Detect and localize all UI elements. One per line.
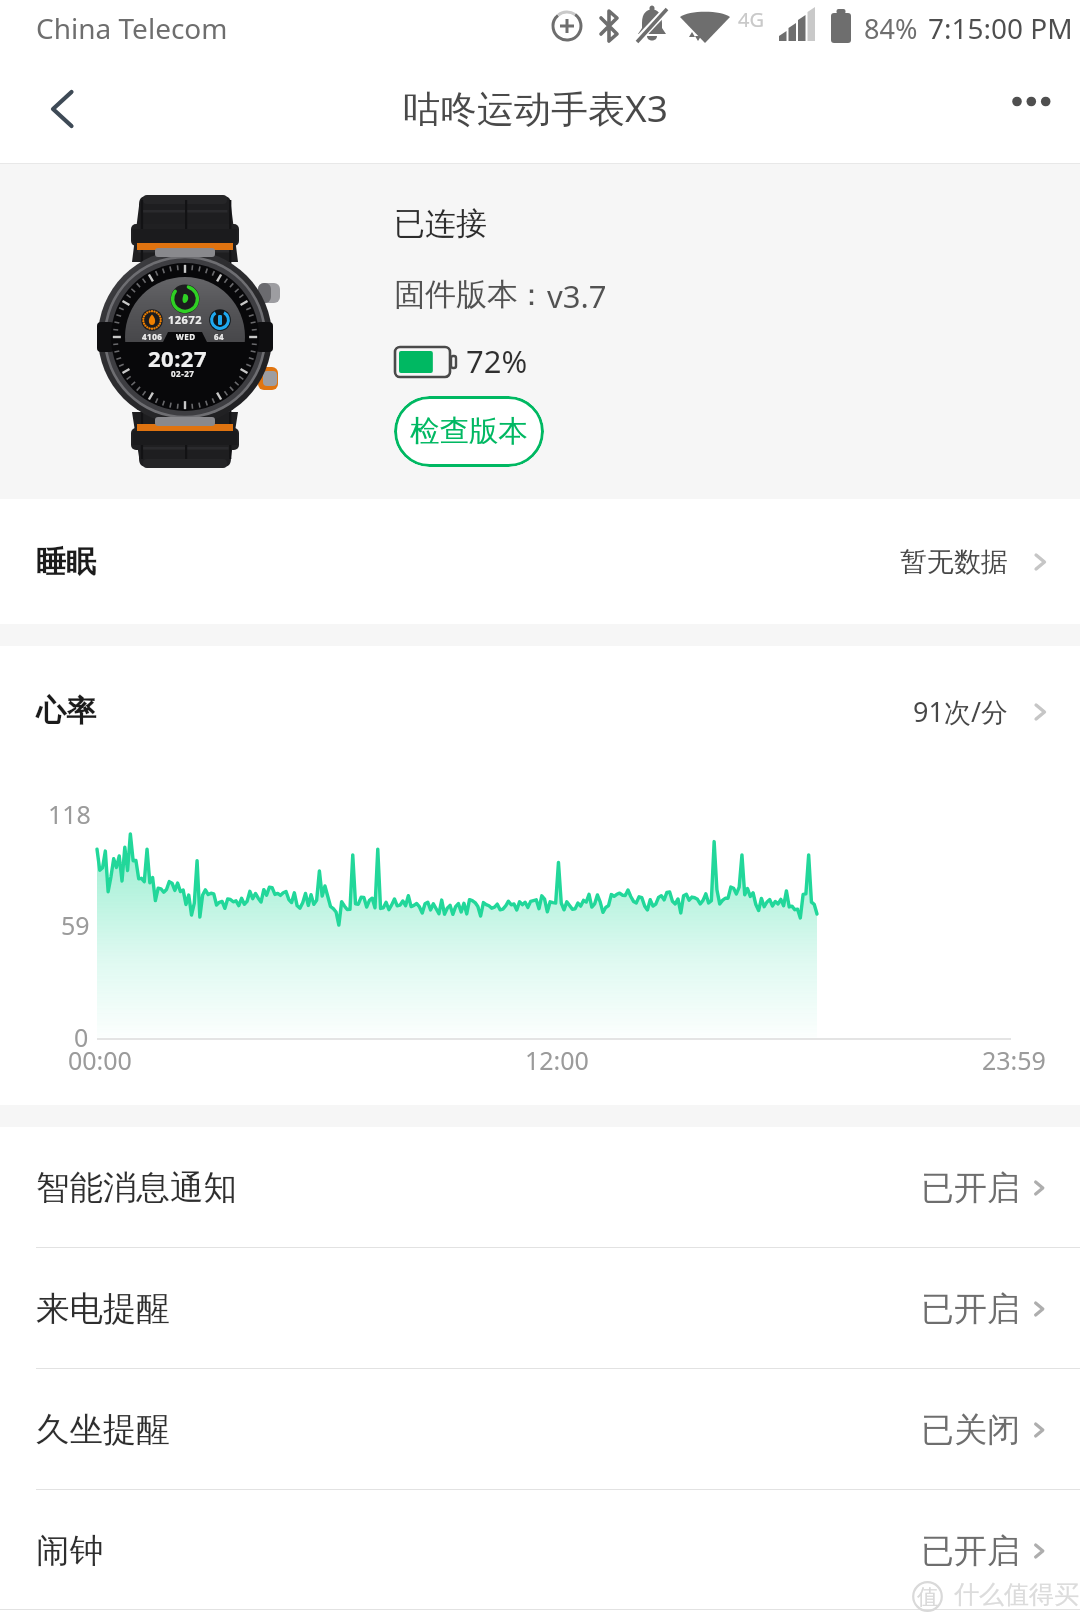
staticText: 已连接: [394, 204, 487, 243]
staticText: 64: [214, 331, 225, 342]
staticText: v3.7: [547, 275, 607, 317]
staticText: 72%: [466, 340, 528, 382]
staticText: 118: [48, 797, 91, 831]
staticText: 什么值得买: [954, 1579, 1079, 1610]
button[interactable]: 检查版本: [394, 396, 544, 467]
staticText: 84%: [864, 10, 918, 47]
staticText: 睡眠: [36, 543, 96, 581]
button[interactable]: Back: [20, 64, 106, 156]
button[interactable]: 睡眠: [0, 499, 1080, 624]
staticText: 59: [61, 908, 90, 942]
staticText: 91次/分: [913, 693, 1008, 730]
staticText: 智能消息通知: [36, 1167, 237, 1209]
button[interactable]: 久坐提醒: [0, 1369, 1080, 1490]
button[interactable]: 来电提醒: [0, 1248, 1080, 1369]
staticText: 20:27: [148, 343, 208, 373]
button[interactable]: 智能消息通知: [0, 1127, 1080, 1248]
staticText: 闹钟: [36, 1530, 103, 1572]
staticText: 心率: [36, 692, 96, 730]
staticText: 已开启: [921, 1288, 1020, 1330]
button[interactable]: 心率: [0, 646, 1080, 776]
staticText: 12:00: [525, 1043, 589, 1077]
staticText: 值: [917, 1584, 938, 1610]
staticText: WED: [176, 331, 196, 342]
staticText: 02-27: [171, 368, 195, 379]
staticText: 7:15:00 PM: [928, 9, 1073, 47]
staticText: 4G: [738, 6, 764, 33]
staticText: 检查版本: [410, 413, 528, 450]
staticText: 已关闭: [921, 1409, 1020, 1451]
staticText: 固件版本: [394, 275, 518, 314]
staticText: 久坐提醒: [36, 1409, 170, 1451]
staticText: ：: [516, 275, 547, 314]
staticText: 咕咚运动手表X3: [403, 82, 668, 133]
button[interactable]: More options: [990, 64, 1074, 156]
staticText: 暂无数据: [900, 545, 1008, 579]
staticText: 已开启: [921, 1167, 1020, 1209]
staticText: 00:00: [68, 1043, 132, 1077]
staticText: 23:59: [982, 1043, 1046, 1077]
staticText: 已开启: [921, 1530, 1020, 1572]
staticText: 12672: [168, 312, 202, 327]
staticText: China Telecom: [36, 9, 228, 47]
staticText: 4106: [142, 331, 163, 342]
staticText: 来电提醒: [36, 1288, 170, 1330]
staticText: 0: [74, 1020, 89, 1054]
button[interactable]: 闹钟: [0, 1490, 1080, 1611]
